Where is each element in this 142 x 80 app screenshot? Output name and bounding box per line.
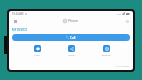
staticText: 10:24 AM — [12, 12, 24, 16]
button[interactable]: Settings — [95, 44, 117, 57]
staticText: LTE — [117, 12, 121, 15]
button[interactable]: Share — [60, 44, 82, 57]
staticText: Phone — [68, 18, 79, 23]
button[interactable]: Chat — [26, 44, 48, 57]
button[interactable]: Settings — [124, 18, 130, 24]
staticText: Chat — [34, 53, 40, 56]
staticText: MY DEVICE — [12, 28, 28, 32]
staticText: Settings — [101, 53, 111, 56]
staticText: Call — [70, 36, 76, 40]
button[interactable]: Menu — [12, 18, 18, 24]
staticText: v 1.0.2 build — [115, 64, 130, 67]
button[interactable]: Call — [12, 34, 130, 41]
staticText: Share — [68, 53, 75, 56]
